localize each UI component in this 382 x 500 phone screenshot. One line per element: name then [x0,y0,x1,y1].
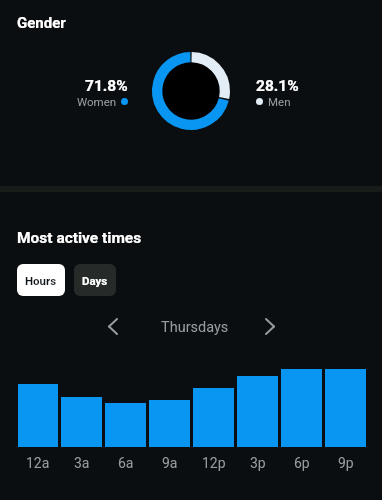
staticText: Men [268,95,291,108]
staticText: Hours [25,274,57,287]
staticText: Thursdays [161,319,229,336]
staticText: 9p [338,455,354,471]
staticText: Most active times [17,229,142,247]
button[interactable]: Next day [256,312,284,340]
button[interactable]: Days [74,264,116,296]
button[interactable]: 28.1% [256,77,299,108]
staticText: 6p [294,455,310,471]
button[interactable]: Hours [17,264,65,296]
staticText: 12p [202,455,226,471]
staticText: 3p [250,455,266,471]
button[interactable]: Previous day [99,312,127,340]
staticText: 3a [74,455,90,471]
staticText: 28.1% [256,77,299,95]
staticText: 12a [26,455,50,471]
button[interactable]: 71.8% [0,77,128,108]
staticText: Gender [17,14,66,32]
staticText: 6a [118,455,134,471]
staticText: Women [77,95,117,108]
staticText: 71.8% [85,77,128,95]
staticText: 9a [162,455,178,471]
staticText: Days [82,274,108,287]
